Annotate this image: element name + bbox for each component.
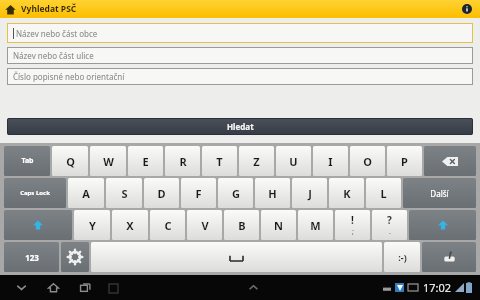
button[interactable]: F	[181, 178, 216, 208]
button[interactable]: P	[387, 146, 422, 176]
staticText: M	[310, 218, 321, 233]
staticText: R	[179, 154, 187, 169]
button[interactable]: X	[112, 210, 148, 240]
button[interactable]: W	[90, 146, 126, 176]
button[interactable]: D	[144, 178, 179, 208]
staticText: U	[289, 154, 298, 169]
staticText: Název nebo část obce	[16, 28, 98, 39]
button[interactable]: B	[224, 210, 259, 240]
button[interactable]: K	[329, 178, 364, 208]
button[interactable]: Shift	[4, 210, 72, 240]
staticText: O	[363, 154, 372, 169]
button[interactable]: T	[202, 146, 237, 176]
staticText: G	[232, 186, 240, 201]
staticText: D	[157, 186, 166, 201]
staticText: J	[308, 186, 312, 201]
button[interactable]: S	[106, 178, 142, 208]
button[interactable]: V	[187, 210, 222, 240]
button[interactable]: Shift	[409, 210, 476, 240]
staticText: C	[164, 218, 172, 233]
button[interactable]: H	[255, 178, 290, 208]
staticText: T	[216, 154, 223, 169]
button[interactable]: Z	[239, 146, 274, 176]
button[interactable]: Home	[40, 275, 66, 300]
button[interactable]: Název nebo část ulice	[7, 47, 473, 64]
button[interactable]: Caps Lock	[4, 178, 66, 208]
staticText: L	[380, 186, 387, 201]
staticText: Číslo popisné nebo orientační	[13, 71, 125, 82]
button[interactable]: Settings	[61, 242, 89, 272]
button[interactable]: I	[313, 146, 348, 176]
staticText: Y	[89, 218, 96, 233]
button[interactable]: N	[261, 210, 296, 240]
button[interactable]: Hledat	[7, 118, 473, 135]
staticText: Tab	[21, 156, 34, 166]
staticText: N	[274, 218, 283, 233]
staticText: S	[121, 186, 128, 201]
button[interactable]: 123	[4, 242, 59, 272]
staticText: Caps Lock	[20, 189, 50, 197]
staticText: I	[328, 154, 333, 169]
button[interactable]: Číslo popisné nebo orientační	[7, 68, 473, 85]
button[interactable]: :-)	[384, 242, 420, 272]
button[interactable]: Back	[8, 275, 34, 300]
staticText: Hledat	[227, 121, 254, 132]
staticText: F	[195, 186, 202, 201]
staticText: Další	[430, 188, 449, 199]
staticText: V	[201, 218, 209, 233]
button[interactable]: Voice input	[422, 242, 476, 272]
staticText: Vyhledat PSČ	[21, 3, 77, 15]
button[interactable]: Další	[403, 178, 476, 208]
staticText: W	[103, 154, 114, 169]
button[interactable]: Backspace	[424, 146, 476, 176]
button[interactable]: M	[298, 210, 333, 240]
button[interactable]: Q	[52, 146, 88, 176]
button[interactable]: L	[366, 178, 401, 208]
staticText: Název nebo část ulice	[13, 50, 94, 61]
staticText: E	[142, 154, 149, 169]
staticText: ;	[352, 227, 354, 237]
staticText: X	[126, 218, 134, 233]
staticText: A	[82, 186, 90, 201]
button[interactable]: Recent apps	[72, 275, 98, 300]
button[interactable]: Y	[74, 210, 110, 240]
staticText: P	[401, 154, 408, 169]
staticText: ?	[387, 213, 392, 227]
staticText: H	[268, 186, 277, 201]
button[interactable]: J	[292, 178, 327, 208]
staticText: 123	[25, 252, 39, 263]
button[interactable]: !	[335, 210, 370, 240]
staticText: !	[351, 213, 354, 227]
button[interactable]: C	[150, 210, 185, 240]
button[interactable]: Název nebo část obce	[7, 23, 473, 43]
button[interactable]: G	[218, 178, 253, 208]
button[interactable]: A	[68, 178, 104, 208]
staticText: :-)	[398, 251, 407, 263]
button[interactable]: Space	[91, 242, 382, 272]
button[interactable]: R	[165, 146, 200, 176]
button[interactable]: E	[128, 146, 163, 176]
button[interactable]: ?	[372, 210, 407, 240]
button[interactable]: O	[350, 146, 385, 176]
staticText: Z	[253, 154, 260, 169]
staticText: B	[238, 218, 246, 233]
button[interactable]: Info	[459, 1, 475, 17]
button[interactable]: U	[276, 146, 311, 176]
staticText: Q	[66, 154, 75, 169]
staticText: K	[343, 186, 351, 201]
staticText: .	[389, 227, 391, 237]
staticText: 17:02	[423, 280, 452, 295]
button[interactable]: Tab	[4, 146, 50, 176]
